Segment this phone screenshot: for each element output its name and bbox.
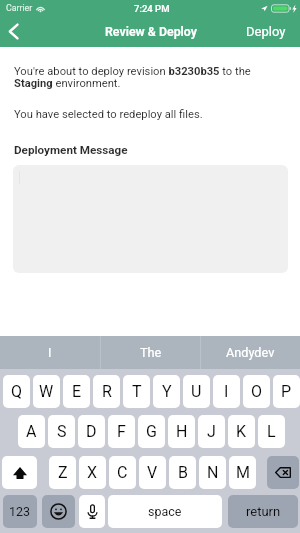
staticText: 7:24 PM xyxy=(134,3,170,14)
staticText: V xyxy=(147,463,158,482)
button[interactable]: Backspace xyxy=(267,456,299,489)
button[interactable]: K xyxy=(228,415,255,448)
button[interactable]: I xyxy=(0,336,100,369)
staticText: The xyxy=(140,345,162,360)
button[interactable]: space xyxy=(108,495,222,528)
staticText: A xyxy=(26,422,37,441)
staticText: X xyxy=(87,463,98,482)
staticText: You have selected to redeploy all files. xyxy=(14,108,203,121)
staticText: H xyxy=(176,422,188,441)
staticText: E xyxy=(72,382,82,401)
button[interactable]: W xyxy=(33,375,60,408)
staticText: I xyxy=(224,382,229,401)
staticText: K xyxy=(236,422,247,441)
button[interactable]: O xyxy=(243,375,270,408)
button[interactable]: E xyxy=(63,375,90,408)
staticText: return xyxy=(246,504,281,519)
staticText: P xyxy=(281,382,292,401)
staticText: space xyxy=(148,504,182,519)
button[interactable]: The xyxy=(101,336,200,369)
button[interactable]: S xyxy=(48,415,75,448)
staticText: S xyxy=(57,422,67,441)
staticText: O xyxy=(251,382,263,401)
button[interactable]: Y xyxy=(153,375,180,408)
button[interactable]: J xyxy=(198,415,225,448)
staticText: I xyxy=(48,345,52,360)
staticText: Y xyxy=(162,382,172,401)
button[interactable]: I xyxy=(213,375,240,408)
staticText: Carrier xyxy=(6,3,33,13)
button[interactable]: Andydev xyxy=(201,336,300,369)
staticText: You're about to deploy revision b3230b35… xyxy=(14,65,286,90)
button[interactable]: 123 xyxy=(3,495,37,528)
button[interactable]: N xyxy=(199,456,226,489)
button[interactable]: D xyxy=(78,415,105,448)
button[interactable]: P xyxy=(273,375,300,408)
staticText: F xyxy=(117,422,126,441)
button[interactable]: Shift xyxy=(2,456,37,489)
staticText: C xyxy=(117,463,128,482)
button[interactable]: Back xyxy=(0,16,34,47)
button[interactable]: X xyxy=(79,456,106,489)
staticText: M xyxy=(236,463,250,482)
button[interactable]: U xyxy=(183,375,210,408)
button[interactable]: R xyxy=(93,375,120,408)
staticText: Deployment Message xyxy=(14,143,128,157)
button[interactable]: M xyxy=(229,456,256,489)
button[interactable]: H xyxy=(168,415,195,448)
staticText: Andydev xyxy=(226,345,275,360)
button[interactable]: L xyxy=(258,415,285,448)
staticText: J xyxy=(207,422,216,441)
staticText: U xyxy=(191,382,202,401)
staticText: R xyxy=(102,382,112,401)
button[interactable]: Dictation xyxy=(79,495,105,528)
button[interactable]: Deploy xyxy=(235,17,300,46)
button[interactable]: F xyxy=(108,415,135,448)
staticText: T xyxy=(132,382,142,401)
button[interactable]: B xyxy=(169,456,196,489)
staticText: Z xyxy=(58,463,68,482)
staticText: N xyxy=(207,463,219,482)
button[interactable]: return xyxy=(228,495,298,528)
button[interactable]: C xyxy=(109,456,136,489)
button[interactable]: A xyxy=(18,415,45,448)
staticText: L xyxy=(267,422,276,441)
staticText: Deploy xyxy=(246,24,286,39)
staticText: Q xyxy=(11,382,23,401)
staticText: B xyxy=(178,463,188,482)
button[interactable]: V xyxy=(139,456,166,489)
staticText: 123 xyxy=(9,504,31,519)
button[interactable]: Z xyxy=(49,456,76,489)
staticText: Review & Deploy xyxy=(105,24,197,39)
staticText: G xyxy=(146,422,157,441)
staticText: D xyxy=(86,422,97,441)
button[interactable]: Q xyxy=(3,375,30,408)
button[interactable]: Emoji xyxy=(42,495,75,528)
button[interactable]: T xyxy=(123,375,150,408)
staticText: W xyxy=(39,382,54,401)
button[interactable]: G xyxy=(138,415,165,448)
